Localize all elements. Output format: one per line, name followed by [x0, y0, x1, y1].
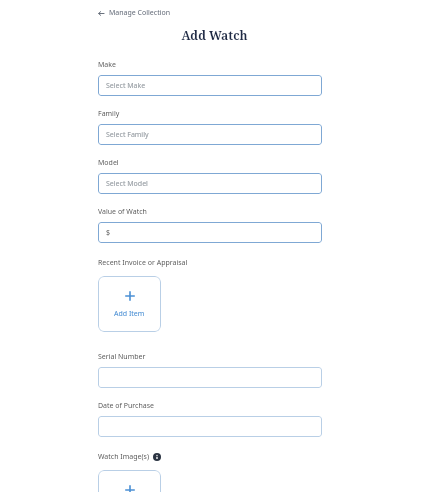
staticText: Model — [98, 158, 119, 168]
button[interactable]: Select Family — [98, 124, 322, 145]
staticText: Value of Watch — [98, 207, 147, 217]
button[interactable]: Select Make — [98, 75, 322, 96]
button[interactable]: Add Item — [98, 276, 161, 332]
button[interactable]: More information — [153, 453, 161, 461]
staticText: Watch Image(s) — [98, 452, 149, 462]
staticText: Select Make — [106, 81, 146, 91]
staticText: Select Model — [106, 179, 148, 189]
staticText: Make — [98, 60, 116, 70]
staticText: Manage Collection — [109, 8, 171, 18]
staticText: Add Item — [114, 309, 145, 319]
staticText: Select Family — [106, 130, 149, 140]
staticText: Recent Invoice or Appraisal — [98, 258, 188, 268]
staticText: $ — [106, 228, 111, 238]
staticText: Date of Purchase — [98, 401, 155, 411]
button[interactable] — [98, 416, 322, 437]
staticText: Add Watch — [0, 27, 429, 43]
staticText: Serial Number — [98, 352, 146, 362]
button[interactable]: $ — [98, 222, 322, 243]
button[interactable]: Manage Collection — [96, 6, 173, 20]
button[interactable]: Add Item — [98, 470, 161, 492]
staticText: Family — [98, 109, 120, 119]
button[interactable]: Select Model — [98, 173, 322, 194]
button[interactable] — [98, 367, 322, 388]
